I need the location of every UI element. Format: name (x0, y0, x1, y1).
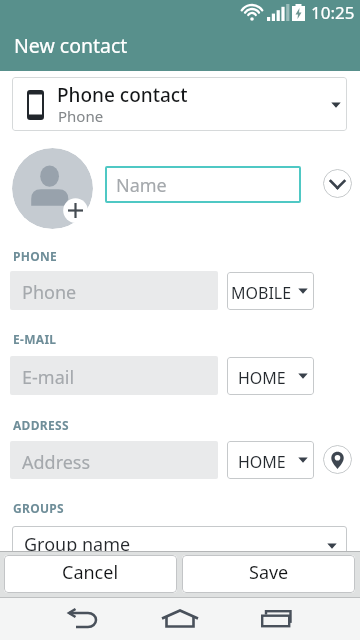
staticText: Save (249, 560, 289, 585)
button[interactable] (248, 598, 304, 640)
button[interactable] (12, 148, 93, 229)
staticText: HOME (238, 367, 286, 389)
button[interactable] (63, 198, 88, 223)
button[interactable] (323, 169, 352, 198)
staticText: E-MAIL (13, 331, 57, 347)
staticText: E-mail (22, 365, 75, 390)
staticText: PHONE (13, 248, 58, 264)
button[interactable]: Name (105, 166, 301, 203)
button[interactable] (54, 598, 110, 640)
button[interactable] (323, 445, 352, 474)
button[interactable]: Phone contact (12, 77, 347, 131)
staticText: Name (116, 173, 167, 198)
button[interactable]: HOME (227, 357, 314, 395)
staticText: GROUPS (13, 500, 64, 516)
staticText: Phone contact (57, 82, 188, 108)
button[interactable]: E-mail (10, 356, 218, 395)
button[interactable]: Save (182, 555, 355, 593)
staticText: New contact (14, 32, 128, 59)
button[interactable]: HOME (227, 441, 314, 479)
button[interactable]: Group name (12, 526, 347, 566)
staticText: Group name (24, 532, 131, 557)
button[interactable]: Phone (10, 271, 218, 310)
staticText: 10:25 (311, 1, 355, 24)
staticText: Address (22, 450, 91, 475)
staticText: ADDRESS (13, 417, 69, 433)
staticText: HOME (238, 451, 286, 473)
button[interactable]: Cancel (4, 555, 177, 593)
staticText: Phone (58, 106, 104, 126)
staticText: Phone (22, 280, 77, 305)
button[interactable] (152, 598, 208, 640)
staticText: Cancel (62, 560, 119, 585)
staticText: MOBILE (231, 282, 292, 304)
button[interactable]: Address (10, 441, 218, 479)
button[interactable]: MOBILE (227, 272, 314, 310)
